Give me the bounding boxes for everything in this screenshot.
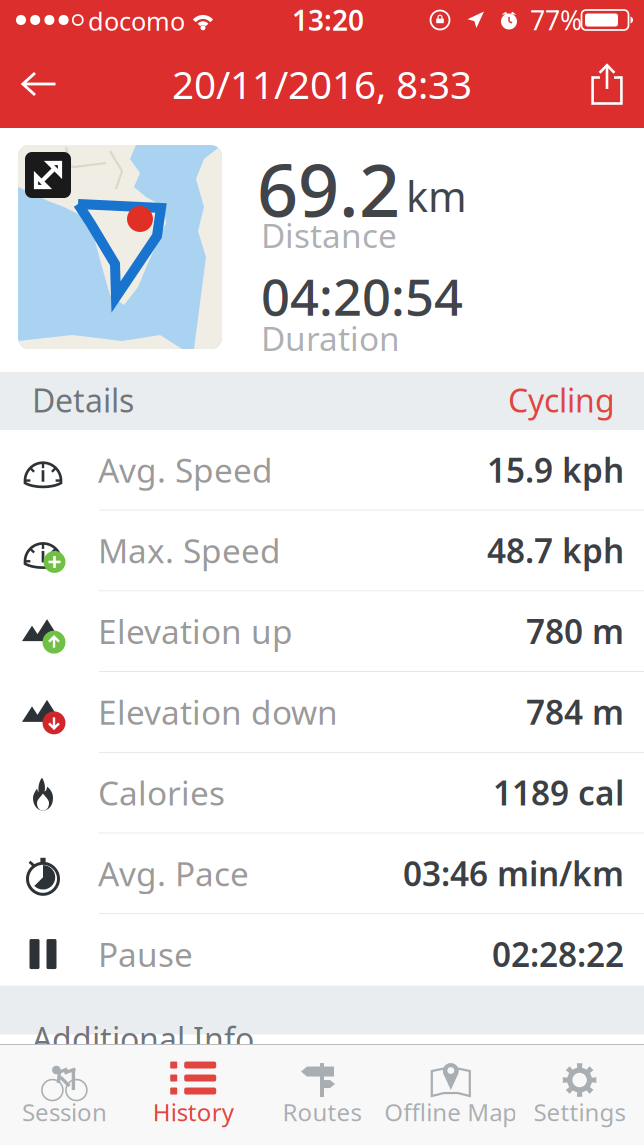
button[interactable]: Max. Speed <box>0 511 644 591</box>
button[interactable]: Share <box>566 40 644 128</box>
button[interactable]: History <box>129 1045 258 1145</box>
staticText: Avg. Pace <box>98 851 249 895</box>
staticText: 780 m <box>526 609 624 653</box>
staticText: 784 m <box>526 690 624 734</box>
button[interactable]: Back <box>0 40 82 128</box>
button[interactable]: Elevation down <box>0 672 644 753</box>
staticText: 1189 cal <box>493 770 624 815</box>
staticText: km <box>406 169 467 223</box>
button[interactable]: Avg. Speed <box>0 430 644 511</box>
staticText: 69.2 <box>257 141 400 237</box>
button[interactable]: Session <box>0 1045 129 1145</box>
button[interactable]: Cycling <box>508 385 644 415</box>
staticText: History <box>153 1096 234 1128</box>
button[interactable]: Calories <box>0 753 644 834</box>
staticText: docomo <box>88 4 185 38</box>
button[interactable]: Pause <box>0 914 644 995</box>
staticText: 20/11/2016, 8:33 <box>172 58 472 110</box>
staticText: Avg. Speed <box>98 448 273 492</box>
staticText: Duration <box>261 316 400 360</box>
staticText: Routes <box>282 1096 361 1128</box>
staticText: Pause <box>98 932 193 976</box>
staticText: Cycling <box>508 379 615 421</box>
staticText: 02:28:22 <box>492 932 624 976</box>
staticText: Settings <box>534 1096 626 1128</box>
staticText: 48.7 kph <box>487 528 624 573</box>
staticText: Additional Info <box>32 1017 254 1060</box>
staticText: 03:46 min/km <box>403 851 624 895</box>
staticText: Calories <box>98 770 225 815</box>
button[interactable]: Offline Map <box>386 1045 515 1145</box>
staticText: 13:20 <box>292 1 364 39</box>
button[interactable]: Elevation up <box>0 591 644 672</box>
staticText: Offline Map <box>384 1096 517 1128</box>
staticText: Elevation up <box>98 609 293 653</box>
staticText: 15.9 kph <box>487 448 624 492</box>
staticText: Distance <box>261 213 397 257</box>
staticText: Session <box>22 1096 107 1128</box>
button[interactable]: Routes <box>258 1045 386 1145</box>
staticText: Max. Speed <box>98 528 281 573</box>
staticText: 77% <box>530 2 582 38</box>
button[interactable]: Avg. Pace <box>0 834 644 914</box>
staticText: Details <box>32 379 134 421</box>
staticText: 04:20:54 <box>261 262 463 330</box>
button[interactable]: Settings <box>515 1045 644 1145</box>
staticText: Elevation down <box>98 690 338 734</box>
